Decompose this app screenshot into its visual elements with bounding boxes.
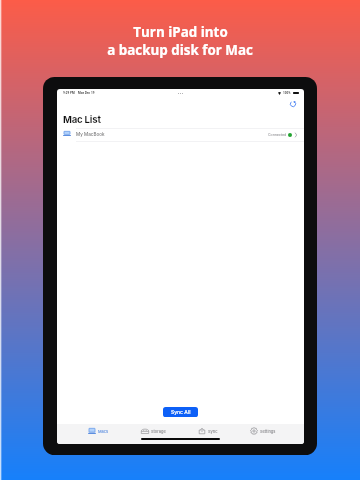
staticText: Sync [208,429,218,434]
staticText: Storage [151,429,166,434]
staticText: Sync All [171,409,191,415]
button[interactable]: Refresh [287,98,299,110]
staticText: Mon Dec 19 [78,91,95,95]
staticText: 100% [283,91,291,95]
staticText: Turn iPad into [133,23,228,41]
staticText: a backup disk for Mac [107,41,253,59]
button[interactable]: Storage [141,428,166,434]
button[interactable]: Sync All [163,407,198,417]
staticText: My MacBook [76,132,105,138]
button[interactable]: Sync [198,428,218,434]
staticText: Mac List [63,114,101,126]
button[interactable]: Settings [250,428,276,434]
button[interactable]: My MacBook [57,129,304,141]
button[interactable]: Macs [88,428,109,434]
staticText: Connected [268,133,287,137]
staticText: Settings [260,429,276,434]
staticText: Macs [98,429,109,434]
staticText: 9:29 PM [63,91,75,95]
